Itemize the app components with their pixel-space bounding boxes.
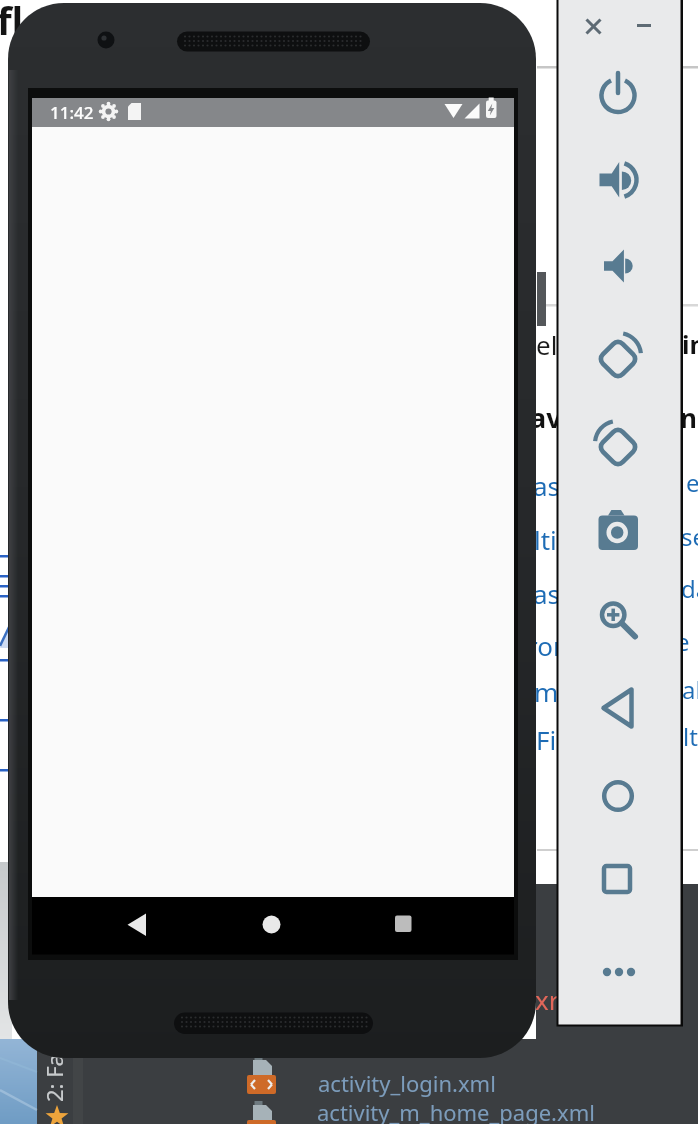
staticText: e [686, 466, 698, 499]
button[interactable] [375, 897, 431, 953]
button[interactable] [588, 150, 648, 210]
staticText: lti [683, 720, 698, 753]
staticText: el [536, 327, 558, 362]
button[interactable] [244, 897, 300, 953]
button[interactable] [587, 849, 647, 909]
button[interactable] [588, 64, 648, 124]
button[interactable] [589, 942, 649, 1002]
staticText: da [681, 572, 698, 605]
button[interactable] [588, 327, 648, 387]
button[interactable] [588, 589, 648, 649]
staticText: activity_m_home_page.xml [317, 1097, 595, 1124]
button[interactable] [109, 897, 165, 953]
button[interactable] [588, 678, 648, 738]
button[interactable] [578, 11, 609, 42]
staticText: av [530, 399, 562, 436]
staticText: al [682, 673, 698, 706]
staticText: ron [527, 628, 570, 663]
staticText: Fi [536, 722, 557, 757]
staticText: e F [676, 625, 698, 658]
staticText: as [533, 468, 561, 503]
staticText: ns [680, 400, 698, 435]
button[interactable] [629, 11, 660, 42]
button[interactable] [588, 236, 648, 296]
button[interactable] [245, 1056, 505, 1096]
staticText: se [681, 520, 698, 553]
staticText: in [682, 327, 698, 361]
button[interactable] [588, 415, 648, 475]
staticText: m [534, 674, 559, 709]
button[interactable] [245, 1098, 615, 1124]
staticText: lti [534, 522, 557, 557]
button[interactable] [588, 501, 648, 561]
staticText: as [533, 576, 561, 611]
staticText: activity_login.xml [318, 1068, 496, 1098]
staticText: xr [535, 982, 560, 1017]
button[interactable] [588, 766, 648, 826]
staticText: fl [0, 0, 24, 46]
staticText: 11:42 [50, 101, 94, 124]
staticText: 2: Fa [39, 1054, 69, 1102]
